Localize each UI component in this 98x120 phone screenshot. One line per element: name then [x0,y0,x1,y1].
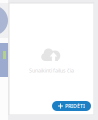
staticText: PRIDĖTI [65,102,85,110]
button[interactable]: PRIDĖTI [52,101,91,111]
staticText: Sunaikinti failus čia [29,67,74,74]
